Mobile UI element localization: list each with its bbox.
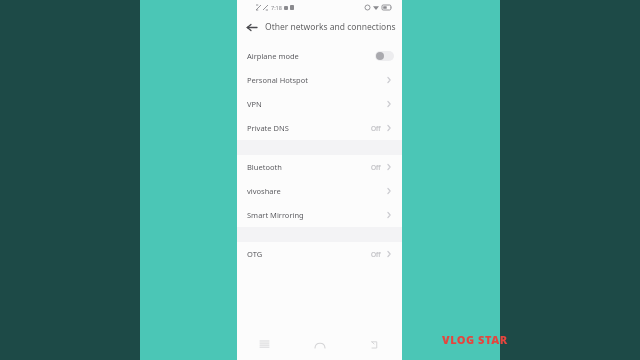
- button[interactable]: VPN: [237, 92, 402, 116]
- other: Airplane mode toggle: [375, 51, 394, 61]
- staticText: Other networks and connections: [265, 21, 396, 33]
- staticText: 7:18: [271, 4, 282, 11]
- button[interactable]: Home: [292, 332, 347, 356]
- staticText: VLOG STAR: [442, 332, 508, 347]
- staticText: Bluetooth: [247, 162, 282, 172]
- staticText: Off: [371, 163, 381, 172]
- staticText: VPN: [247, 99, 262, 109]
- staticText: Airplane mode: [247, 51, 299, 61]
- staticText: vivoshare: [247, 186, 281, 196]
- staticText: Private DNS: [247, 123, 289, 133]
- button[interactable]: Airplane mode: [237, 44, 402, 68]
- button[interactable]: Back: [242, 18, 260, 36]
- button[interactable]: Personal Hotspot: [237, 68, 402, 92]
- staticText: OTG: [247, 249, 263, 259]
- button[interactable]: Smart Mirroring: [237, 203, 402, 227]
- button[interactable]: Recents: [237, 332, 292, 356]
- staticText: Off: [371, 250, 381, 259]
- button[interactable]: OTG: [237, 242, 402, 266]
- button[interactable]: Back: [347, 332, 402, 356]
- button[interactable]: Bluetooth: [237, 155, 402, 179]
- staticText: Off: [371, 124, 381, 133]
- button[interactable]: Private DNS: [237, 116, 402, 140]
- staticText: Personal Hotspot: [247, 75, 308, 85]
- button[interactable]: vivoshare: [237, 179, 402, 203]
- staticText: Smart Mirroring: [247, 210, 304, 220]
